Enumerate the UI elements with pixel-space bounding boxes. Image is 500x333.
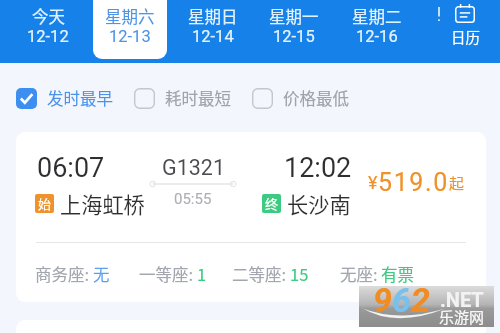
staticText: 05:55 — [174, 190, 212, 208]
button[interactable]: 二等座: — [232, 262, 309, 286]
staticText: 长沙南 — [287, 188, 351, 219]
button[interactable]: 星期六 — [93, 0, 167, 59]
staticText: 发时最早 — [47, 86, 113, 110]
staticText: 上海虹桥 — [60, 188, 145, 219]
staticText: 2 — [411, 280, 430, 320]
staticText: G1321 — [162, 155, 225, 180]
staticText: 15 — [290, 262, 309, 286]
staticText: 耗时最短 — [165, 86, 231, 110]
button[interactable]: 发时最早 — [16, 86, 113, 110]
staticText: 终 — [265, 194, 279, 213]
staticText: 始 — [38, 194, 52, 213]
staticText: 今天 — [32, 4, 65, 28]
staticText: 有票 — [381, 262, 414, 286]
staticText: 6 — [392, 280, 411, 320]
button[interactable]: 星期一 — [257, 0, 331, 59]
staticText: 06:07 — [37, 152, 105, 184]
staticText: 乐游网 — [439, 306, 485, 328]
staticText: 12-13 — [109, 27, 151, 46]
button[interactable]: 星期二 — [340, 0, 414, 59]
button[interactable]: 无座: — [340, 262, 414, 286]
button[interactable]: Calendar — [448, 4, 482, 47]
staticText: 商务座: — [35, 262, 90, 286]
staticText: 二等座: — [232, 262, 287, 286]
staticText: 12:02 — [284, 152, 352, 184]
staticText: 无 — [93, 262, 110, 286]
staticText: 起 — [449, 172, 465, 194]
staticText: 无座: — [340, 262, 378, 286]
staticText: 12-12 — [27, 27, 69, 46]
staticText: 星期日 — [188, 4, 238, 28]
button[interactable]: Notice — [430, 2, 448, 26]
staticText: 12-16 — [356, 27, 398, 46]
staticText: 星期二 — [352, 4, 402, 28]
button[interactable]: 价格最低 — [252, 86, 349, 110]
staticText: 一等座: — [139, 262, 194, 286]
button[interactable] — [16, 320, 486, 333]
staticText: 12-15 — [273, 27, 315, 46]
staticText: 价格最低 — [283, 86, 349, 110]
button[interactable]: 星期日 — [176, 0, 250, 59]
staticText: 12-14 — [192, 27, 234, 46]
button[interactable]: 商务座: — [35, 262, 110, 286]
staticText: 519.0 — [378, 168, 449, 197]
staticText: 星期六 — [105, 4, 155, 28]
button[interactable]: 一等座: — [139, 262, 207, 286]
button[interactable]: 06:07 — [16, 132, 486, 302]
button[interactable]: 耗时最短 — [134, 86, 231, 110]
staticText: .NET — [440, 288, 484, 311]
staticText: 9 — [373, 280, 392, 320]
button[interactable]: 今天 — [11, 0, 85, 59]
staticText: 1 — [197, 262, 207, 286]
staticText: 星期一 — [269, 4, 319, 28]
staticText: ¥ — [368, 172, 378, 193]
staticText: 日历 — [451, 26, 480, 47]
